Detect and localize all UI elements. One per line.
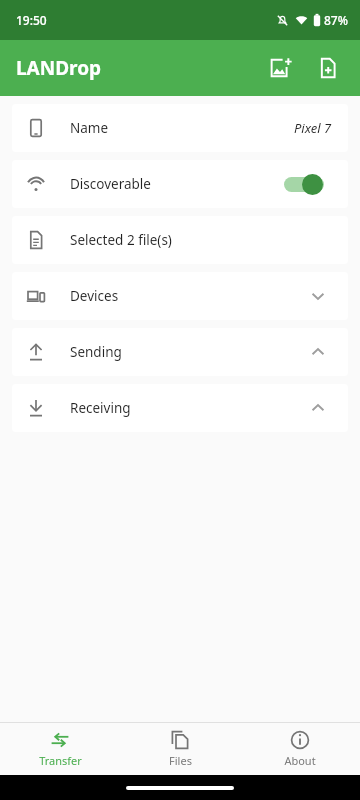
button[interactable]: Name [12,104,348,152]
button[interactable]: Devices [12,272,348,320]
staticText: 19:50 [16,12,47,28]
staticText: Devices [70,287,304,305]
staticText: LANDrop [16,55,102,81]
button[interactable]: Collapse [304,394,332,422]
staticText: Files [169,753,192,768]
staticText: Name [70,119,294,137]
button[interactable]: About [240,723,360,775]
button[interactable]: Add file [304,44,352,92]
staticText: Pixel 7 [294,119,332,137]
staticText: About [284,753,316,768]
staticText: Sending [70,343,304,361]
button[interactable]: Transfer [0,723,120,775]
button[interactable]: Expand [304,282,332,310]
staticText: Receiving [70,399,304,417]
button[interactable]: Collapse [304,338,332,366]
button[interactable]: Add image [256,44,304,92]
button[interactable]: Files [120,723,240,775]
button[interactable]: Discoverable [12,160,348,208]
button[interactable]: Discoverable toggle [280,169,332,199]
button[interactable]: Selected 2 file(s) [12,216,348,264]
button[interactable]: Sending [12,328,348,376]
staticText: Discoverable [70,175,280,193]
staticText: Selected 2 file(s) [70,231,332,249]
staticText: Transfer [39,753,82,768]
button[interactable]: Receiving [12,384,348,432]
staticText: 87% [324,12,348,28]
